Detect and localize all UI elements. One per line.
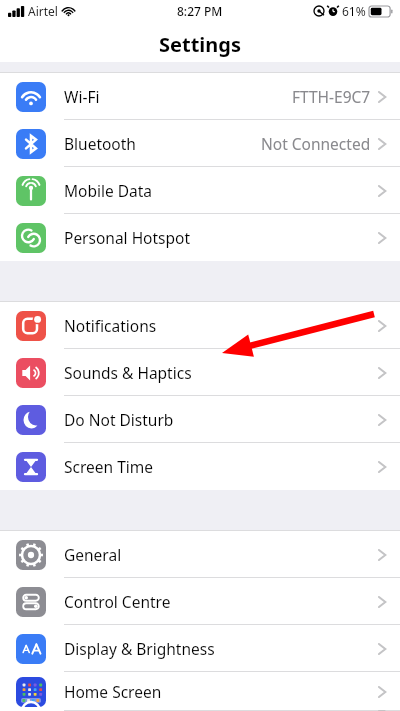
staticText: General bbox=[64, 544, 122, 565]
staticText: FTTH-E9C7 bbox=[292, 86, 371, 107]
button[interactable]: Notifications bbox=[0, 302, 400, 349]
staticText: Wi-Fi bbox=[64, 86, 100, 107]
staticText: Sounds & Haptics bbox=[64, 362, 192, 383]
staticText: Home Screen bbox=[64, 681, 162, 702]
staticText: 8:27 PM bbox=[177, 3, 223, 19]
staticText: Airtel bbox=[28, 3, 58, 19]
staticText: Notifications bbox=[64, 315, 157, 336]
button[interactable]: General bbox=[0, 531, 400, 578]
staticText: Mobile Data bbox=[64, 180, 153, 201]
button[interactable]: Control Centre bbox=[0, 578, 400, 625]
staticText: Bluetooth bbox=[64, 133, 136, 154]
staticText: Display & Brightness bbox=[64, 638, 215, 659]
staticText: Do Not Disturb bbox=[64, 409, 174, 430]
staticText: Settings bbox=[159, 31, 241, 58]
button[interactable]: Sounds & Haptics bbox=[0, 349, 400, 396]
staticText: Not Connected bbox=[261, 133, 371, 154]
button[interactable]: Mobile Data bbox=[0, 167, 400, 214]
button[interactable]: Do Not Disturb bbox=[0, 396, 400, 443]
staticText: 61% bbox=[342, 3, 366, 19]
staticText: Personal Hotspot bbox=[64, 227, 191, 248]
button[interactable]: Bluetooth bbox=[0, 120, 400, 167]
button[interactable]: Personal Hotspot bbox=[0, 214, 400, 261]
button[interactable]: Screen Time bbox=[0, 443, 400, 490]
staticText: Screen Time bbox=[64, 456, 153, 477]
button[interactable]: Wi-Fi bbox=[0, 73, 400, 120]
button[interactable]: Display & Brightness bbox=[0, 625, 400, 672]
button[interactable]: Home Screen bbox=[0, 672, 400, 711]
staticText: Control Centre bbox=[64, 591, 171, 612]
